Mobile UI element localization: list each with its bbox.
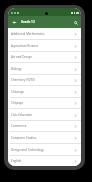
- button[interactable]: Commerce: [8, 120, 81, 132]
- button[interactable]: Art and Design: [8, 51, 81, 63]
- button[interactable]: Chitonga: [8, 86, 81, 98]
- staticText: English: [11, 159, 22, 163]
- staticText: Biology: [11, 67, 22, 71]
- button[interactable]: Agriculture/Science: [8, 40, 81, 52]
- button[interactable]: Search: [71, 18, 80, 27]
- button[interactable]: Chiyanja: [8, 97, 81, 109]
- button[interactable]: Civic Education: [8, 109, 81, 121]
- staticText: Art and Design: [11, 55, 32, 59]
- button[interactable]: Back: [9, 17, 19, 27]
- staticText: Design and Technology: [11, 148, 44, 152]
- button[interactable]: Additional Mathematics: [8, 28, 81, 40]
- staticText: Chitonga: [11, 90, 24, 94]
- staticText: Chemistry (5070): [11, 78, 35, 82]
- staticText: Grade 12: [21, 20, 35, 24]
- staticText: Commerce: [11, 124, 27, 128]
- staticText: Chiyanja: [11, 101, 24, 105]
- staticText: Additional Mathematics: [11, 32, 45, 36]
- button[interactable]: English: [8, 155, 81, 166]
- staticText: Computer Studies: [11, 136, 37, 140]
- button[interactable]: Computer Studies: [8, 132, 81, 144]
- staticText: Agriculture/Science: [11, 44, 39, 48]
- button[interactable]: Chemistry (5070): [8, 74, 81, 86]
- button[interactable]: Design and Technology: [8, 144, 81, 156]
- button[interactable]: Biology: [8, 63, 81, 75]
- staticText: Civic Education: [11, 113, 33, 117]
